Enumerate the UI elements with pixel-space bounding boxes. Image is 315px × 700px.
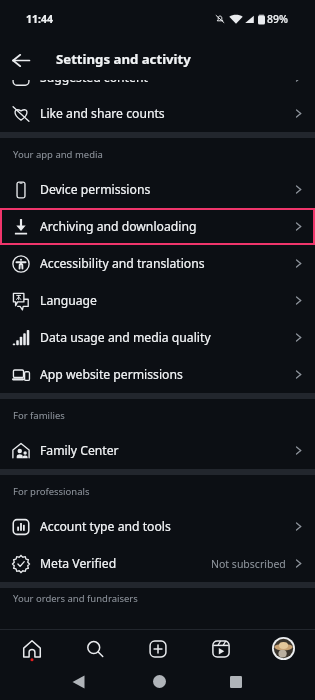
staticText: Meta Verified — [40, 555, 117, 572]
staticText: Your orders and fundraisers — [13, 592, 138, 605]
staticText: Archiving and downloading — [40, 218, 197, 235]
staticText: Like and share counts — [40, 105, 165, 122]
button[interactable]: Archiving and downloading — [0, 208, 315, 245]
button[interactable]: Accessibility and translations — [0, 245, 315, 282]
button[interactable]: Back — [3, 42, 39, 78]
button[interactable]: Language — [0, 282, 315, 319]
button[interactable]: Like and share counts — [0, 95, 315, 132]
staticText: Family Center — [40, 442, 119, 459]
staticText: Device permissions — [40, 181, 151, 198]
button[interactable]: Home — [0, 630, 63, 667]
button[interactable]: Recent apps — [220, 670, 252, 693]
button[interactable]: Device permissions — [0, 171, 315, 208]
button[interactable]: Family Center — [0, 432, 315, 469]
button[interactable]: Meta Verified — [0, 545, 315, 582]
button[interactable]: Reels — [189, 630, 252, 667]
button[interactable]: Home — [143, 670, 175, 693]
staticText: Account type and tools — [40, 518, 171, 535]
staticText: Suggested content — [40, 80, 148, 86]
button[interactable]: Data usage and media quality — [0, 319, 315, 356]
staticText: For families — [13, 409, 65, 422]
staticText: Settings and activity — [56, 50, 191, 68]
button[interactable]: Search — [63, 630, 126, 667]
staticText: Language — [40, 292, 97, 309]
button[interactable]: App website permissions — [0, 356, 315, 393]
staticText: Your app and media — [13, 148, 103, 161]
button[interactable]: Account type and tools — [0, 508, 315, 545]
staticText: For professionals — [13, 485, 90, 498]
staticText: Data usage and media quality — [40, 329, 211, 346]
button[interactable]: Create — [126, 630, 189, 667]
staticText: Not subscribed — [211, 557, 286, 571]
staticText: Accessibility and translations — [40, 255, 205, 272]
staticText: App website permissions — [40, 366, 183, 383]
staticText: 11:44 — [26, 12, 53, 26]
button[interactable]: Profile — [252, 630, 315, 667]
button[interactable]: Back — [62, 670, 94, 693]
staticText: 89% — [267, 12, 288, 26]
